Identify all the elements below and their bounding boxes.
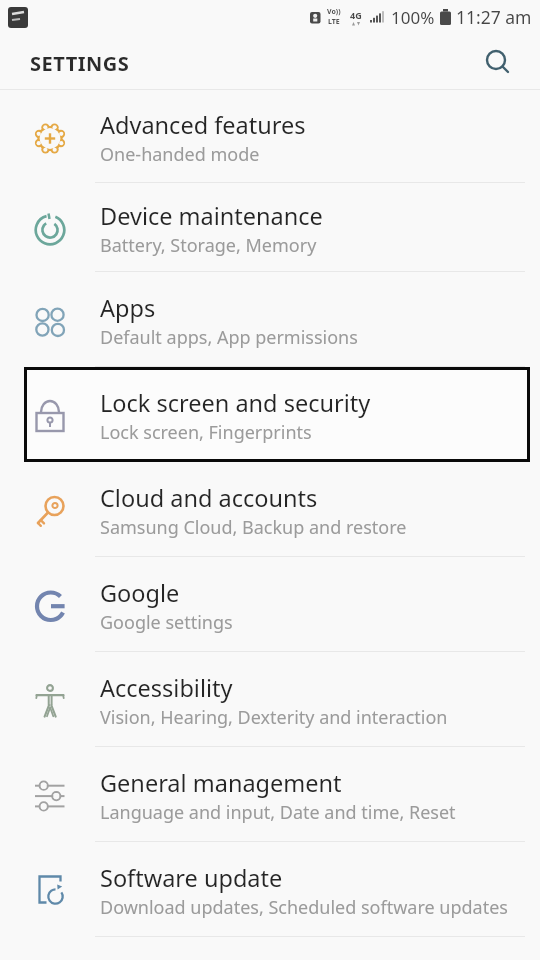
staticText: Battery, Storage, Memory (100, 233, 317, 258)
button[interactable]: Lock screen and security (0, 368, 540, 463)
button[interactable]: General management (0, 748, 540, 843)
staticText: Lock screen and security (100, 387, 371, 419)
staticText: SETTINGS (30, 50, 130, 77)
button[interactable]: Advanced features (0, 91, 540, 184)
staticText: Google (100, 577, 180, 609)
button[interactable]: Google (0, 558, 540, 653)
staticText: 4G (350, 9, 362, 21)
staticText: Vo)) (327, 7, 341, 17)
staticText: One-handed mode (100, 142, 260, 167)
staticText: Accessibility (100, 672, 233, 704)
staticText: 100% (391, 6, 435, 29)
staticText: Software update (100, 862, 283, 894)
staticText: Default apps, App permissions (100, 325, 358, 350)
staticText: Device maintenance (100, 200, 323, 232)
button[interactable] (484, 49, 512, 77)
staticText: Advanced features (100, 109, 306, 141)
staticText: Google settings (100, 610, 233, 635)
staticText: 11:27 am (456, 5, 532, 29)
staticText: Vision, Hearing, Dexterity and interacti… (100, 705, 448, 730)
staticText: Lock screen, Fingerprints (100, 420, 312, 445)
staticText: Cloud and accounts (100, 482, 318, 514)
staticText: LTE (328, 17, 340, 27)
button[interactable]: Device maintenance (0, 184, 540, 273)
staticText: Download updates, Scheduled software upd… (100, 895, 508, 920)
staticText: Samsung Cloud, Backup and restore (100, 515, 407, 540)
button[interactable]: Apps (0, 273, 540, 368)
staticText: Language and input, Date and time, Reset (100, 800, 456, 825)
button[interactable]: Cloud and accounts (0, 463, 540, 558)
staticText: General management (100, 767, 342, 799)
staticText: Apps (100, 292, 156, 324)
button[interactable]: Software update (0, 843, 540, 938)
button[interactable]: Accessibility (0, 653, 540, 748)
